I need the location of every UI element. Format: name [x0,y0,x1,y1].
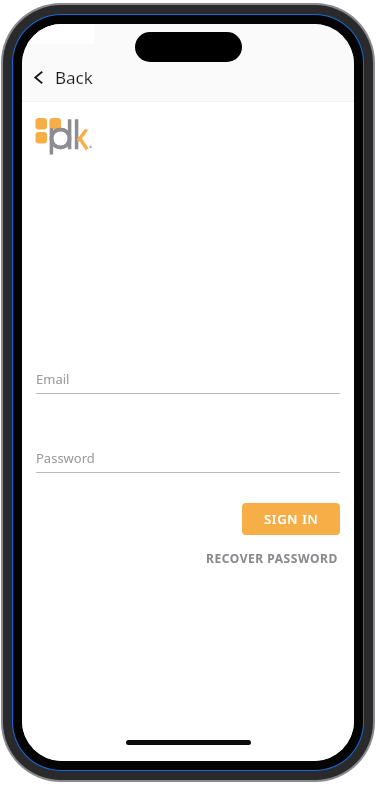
staticText: Email [36,370,70,388]
button[interactable]: Email [36,370,340,394]
button[interactable]: Back [22,61,111,94]
staticText: Password [36,449,95,467]
button[interactable]: RECOVER PASSWORD [204,547,340,569]
button[interactable]: SIGN IN [242,503,340,535]
staticText: Back [55,66,93,89]
staticText: SIGN IN [264,510,319,528]
staticText: RECOVER PASSWORD [206,550,338,566]
button[interactable]: Password [36,449,340,473]
